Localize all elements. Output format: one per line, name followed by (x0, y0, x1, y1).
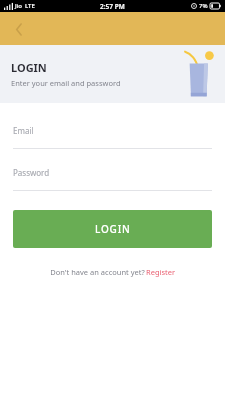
button[interactable]: Back (8, 18, 30, 40)
staticText: LOGIN (95, 222, 131, 236)
staticText: Password (13, 167, 50, 178)
staticText: 2:57 PM (100, 2, 125, 11)
staticText: LOGIN (11, 60, 47, 75)
staticText: Don't have an account yet? (49, 267, 146, 277)
button[interactable]: Password (0, 163, 225, 191)
button[interactable]: Don't have an account yet? (0, 267, 225, 277)
button[interactable]: Email (0, 121, 225, 149)
staticText: Email (13, 125, 34, 136)
staticText: LTE (25, 2, 35, 10)
button[interactable]: LOGIN (13, 210, 212, 248)
staticText: Enter your email and password (11, 78, 121, 88)
staticText: 7% (199, 2, 208, 10)
staticText: Jio (15, 2, 23, 10)
staticText: Register (146, 267, 176, 277)
